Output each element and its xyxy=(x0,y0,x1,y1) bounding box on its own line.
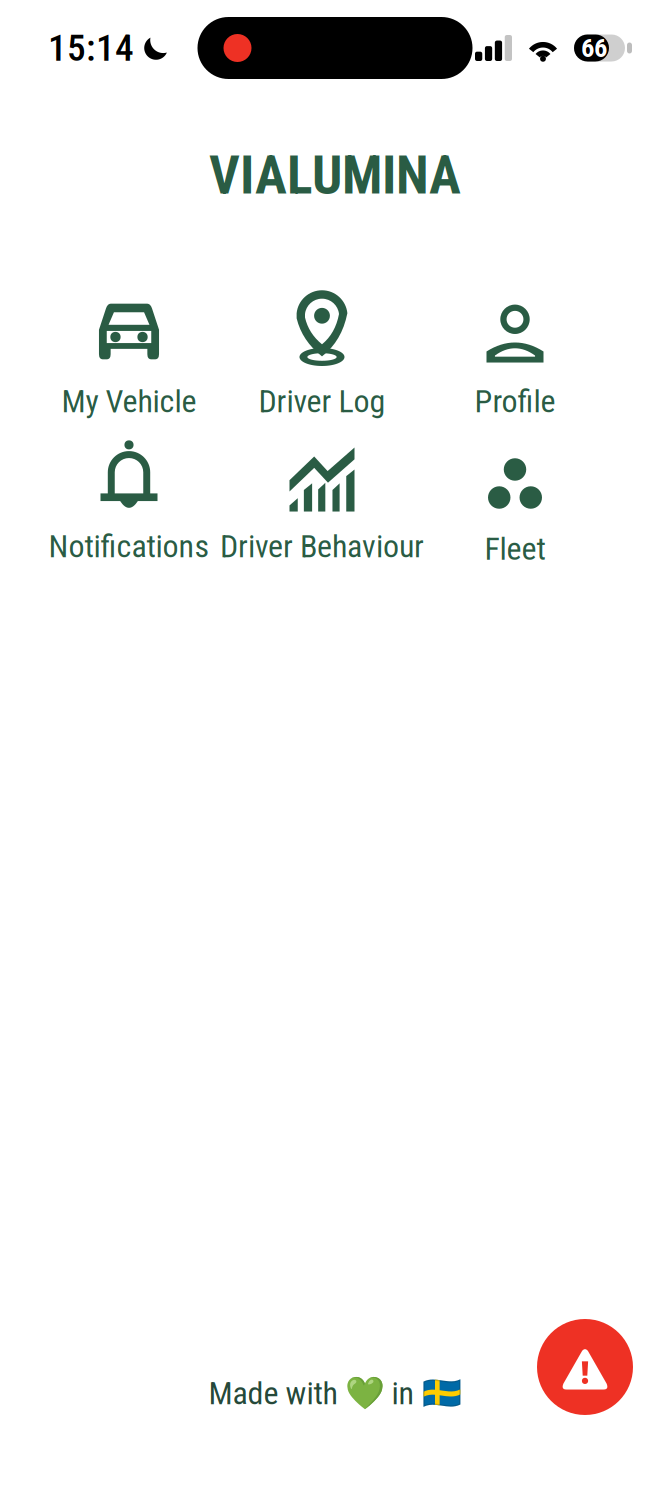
button[interactable]: Driver Behaviour xyxy=(225,440,418,565)
staticText: Driver Behaviour xyxy=(220,527,424,565)
button[interactable]: Report an issue xyxy=(537,1319,633,1415)
button[interactable]: Driver Log xyxy=(225,294,418,420)
button[interactable]: Fleet xyxy=(418,438,611,567)
staticText: Driver Log xyxy=(258,382,385,420)
staticText: 15:14 xyxy=(48,26,134,70)
staticText: Fleet xyxy=(484,530,545,567)
button[interactable]: Profile xyxy=(418,294,611,420)
staticText: Notifications xyxy=(48,527,209,565)
staticText: 66 xyxy=(581,32,607,64)
button[interactable]: My Vehicle xyxy=(32,294,225,420)
staticText: Profile xyxy=(474,382,555,420)
staticText: Made with 💚 in 🇸🇪 xyxy=(208,1374,461,1412)
staticText: VIALUMINA xyxy=(209,144,461,206)
staticText: My Vehicle xyxy=(61,382,196,420)
button[interactable]: Notifications xyxy=(32,440,225,565)
